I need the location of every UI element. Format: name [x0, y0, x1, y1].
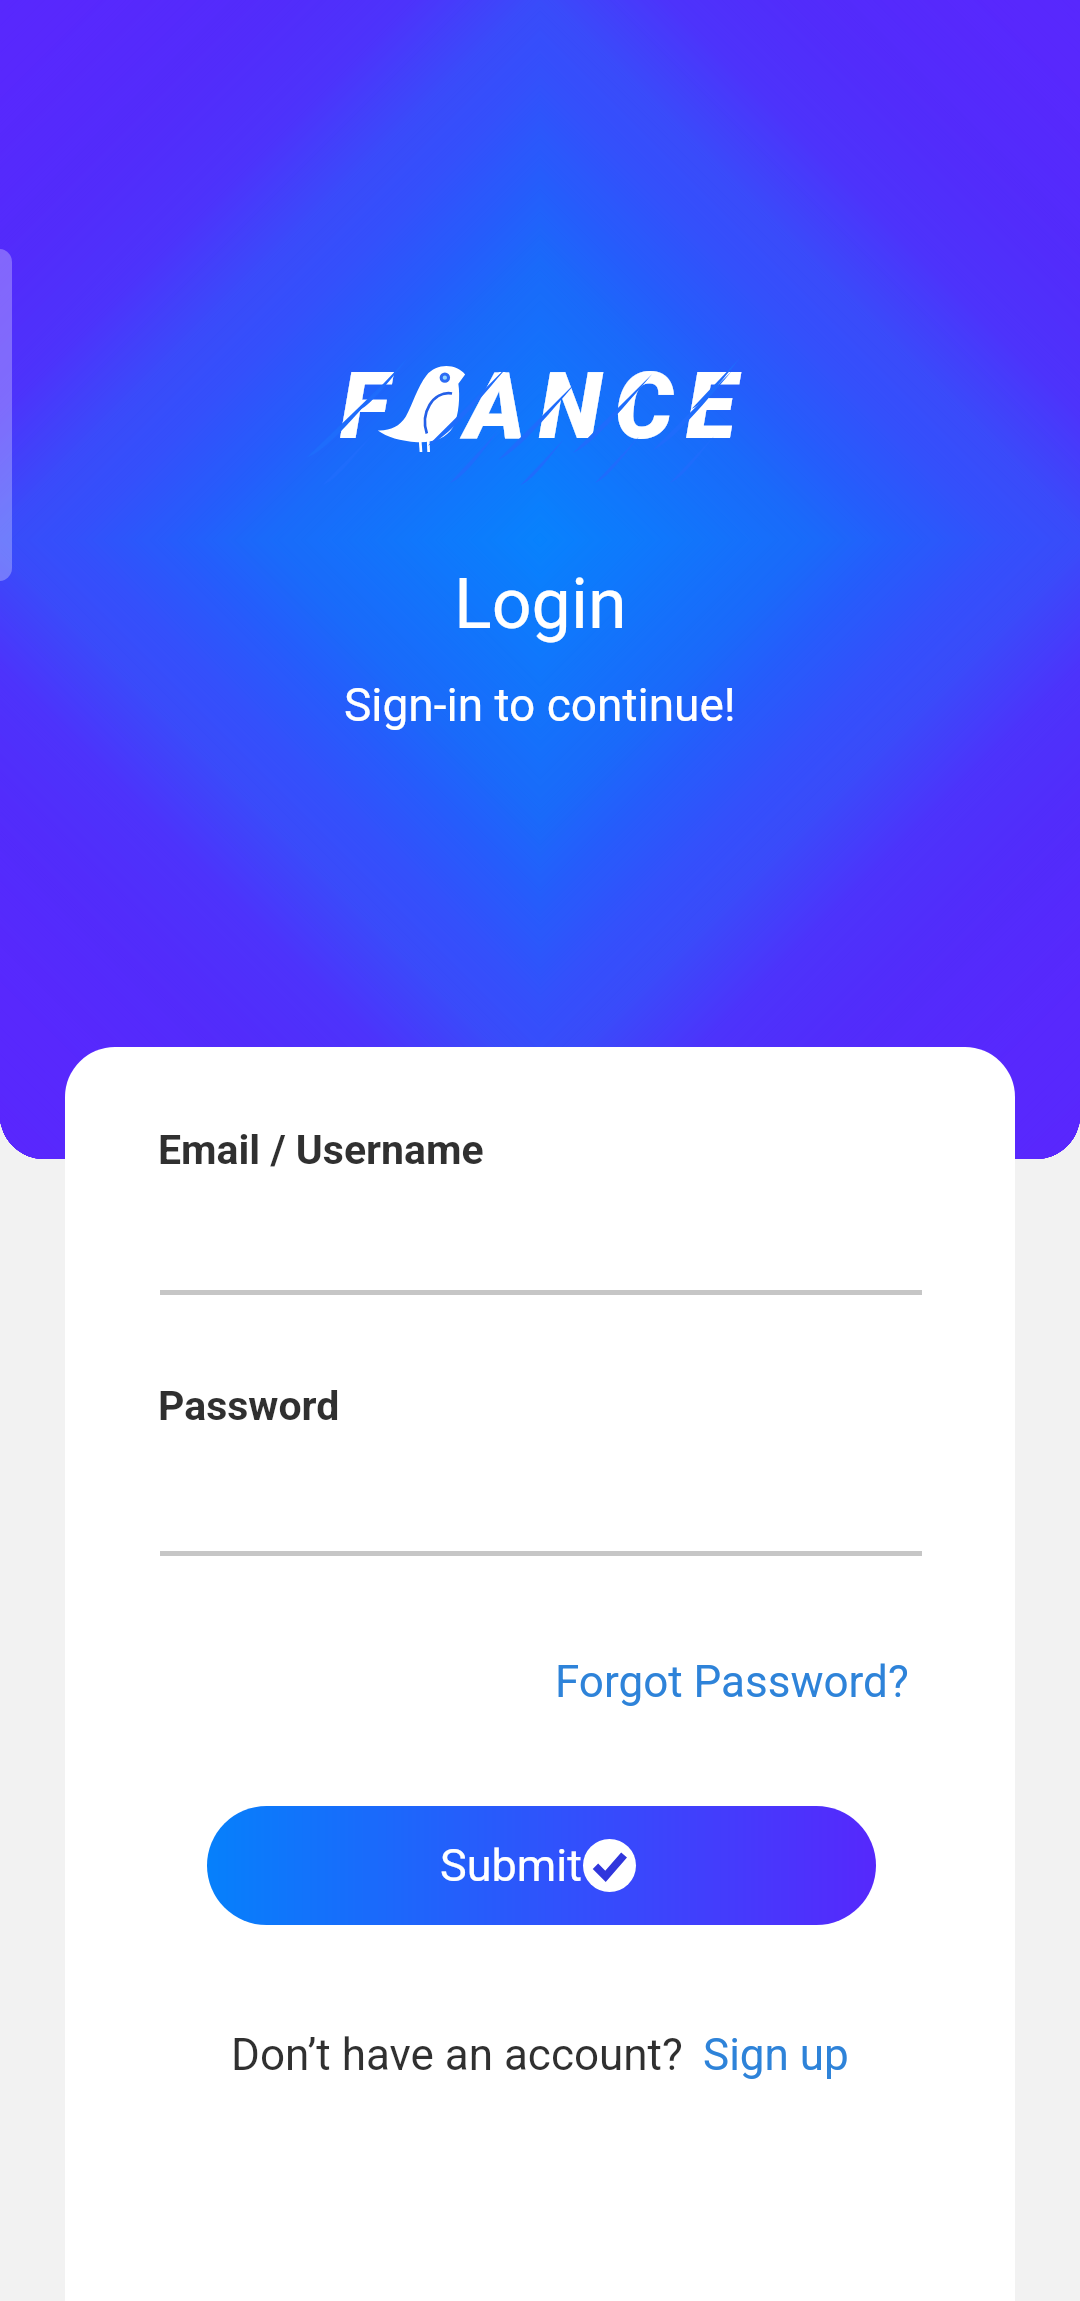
staticText: Sign-in to continue!: [344, 678, 736, 732]
button[interactable]: Email / Username: [160, 1107, 922, 1295]
button[interactable]: Sign up: [683, 2023, 855, 2087]
staticText: F: [340, 353, 402, 461]
button[interactable]: Submit: [207, 1806, 876, 1925]
staticText: Submit: [440, 1839, 582, 1892]
staticText: Login: [454, 563, 627, 645]
staticText: ANCE: [465, 353, 749, 461]
button[interactable]: Password: [160, 1363, 922, 1556]
staticText: Password: [158, 1382, 340, 1430]
staticText: Don’t have an account?: [231, 2029, 683, 2081]
other: Fiance: [320, 353, 760, 469]
button[interactable]: Forgot Password?: [547, 1648, 917, 1716]
staticText: Sign up: [703, 2029, 849, 2081]
staticText: Email / Username: [158, 1126, 484, 1174]
staticText: Forgot Password?: [555, 1656, 909, 1708]
